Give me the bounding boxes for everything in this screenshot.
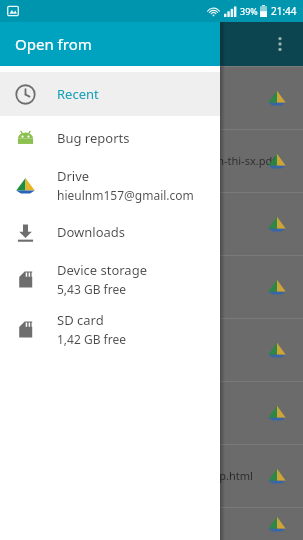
button[interactable] bbox=[0, 381, 303, 444]
button[interactable] bbox=[0, 255, 303, 318]
button[interactable]: ...lieu-hoc-tap.html bbox=[0, 444, 303, 507]
staticText: Device storage bbox=[57, 261, 147, 279]
staticText: ...lieu-hoc-tap.html bbox=[150, 468, 253, 483]
button[interactable]: Bug reports bbox=[0, 116, 220, 160]
button[interactable]: SD card bbox=[0, 304, 220, 354]
staticText: Open from bbox=[15, 34, 92, 54]
staticText: hieulnm157@gmail.com bbox=[57, 187, 194, 203]
staticText: Recent bbox=[57, 85, 99, 103]
button[interactable]: Recent bbox=[0, 72, 220, 116]
staticText: 21:44 bbox=[271, 4, 297, 18]
button[interactable] bbox=[0, 318, 303, 381]
staticText: Drive bbox=[57, 167, 90, 185]
button[interactable]: Drive bbox=[0, 160, 220, 210]
button[interactable] bbox=[0, 192, 303, 255]
staticText: 5,43 GB free bbox=[57, 281, 126, 297]
button[interactable]: More options bbox=[263, 27, 297, 61]
staticText: Downloads bbox=[57, 223, 126, 241]
staticText: ... Bang-diem-thi-sx.pdf bbox=[150, 153, 276, 168]
staticText: SD card bbox=[57, 311, 104, 329]
staticText: 1,42 GB free bbox=[57, 331, 126, 347]
button[interactable]: ... Bang-diem-thi-sx.pdf bbox=[0, 129, 303, 192]
button[interactable]: Downloads bbox=[0, 210, 220, 254]
button[interactable] bbox=[0, 507, 303, 540]
button[interactable]: Device storage bbox=[0, 254, 220, 304]
button[interactable] bbox=[0, 66, 303, 129]
staticText: 39% bbox=[240, 5, 258, 17]
staticText: Bug reports bbox=[57, 129, 130, 147]
